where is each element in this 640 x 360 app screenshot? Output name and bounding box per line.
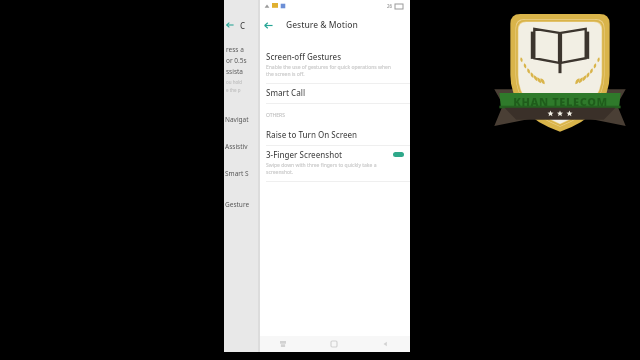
button[interactable]: Screen-off Gestures	[258, 48, 410, 83]
staticText: LTE	[253, 3, 261, 9]
staticText: Navigat	[225, 115, 249, 124]
button[interactable]: Back	[258, 15, 278, 35]
staticText: Assistiv	[225, 142, 248, 151]
staticText: KHAN TELECOM	[513, 94, 608, 109]
button[interactable]: Back	[379, 338, 391, 350]
staticText: ou hold	[226, 79, 243, 85]
button[interactable]: Home	[328, 338, 340, 350]
staticText: OTHERS	[266, 112, 285, 119]
button[interactable]: 3-Finger Screenshot	[258, 146, 410, 181]
staticText: Smart Call	[266, 87, 306, 98]
staticText: ssista	[226, 67, 244, 76]
staticText: Smart S	[225, 169, 249, 178]
staticText: or 0.5s	[226, 56, 247, 65]
button[interactable]: Recents	[277, 338, 289, 350]
button[interactable]: 3-Finger Screenshot toggle	[393, 152, 404, 157]
button[interactable]: Smart Call	[258, 84, 410, 103]
staticText: Gesture & Motion	[286, 19, 358, 31]
button[interactable]: Raise to Turn On Screen	[258, 126, 410, 145]
staticText: 3-Finger Screenshot	[266, 149, 343, 160]
staticText: 26	[387, 3, 393, 9]
staticText: Raise to Turn On Screen	[266, 129, 358, 140]
staticText: ress a	[226, 45, 244, 54]
staticText: Enable the use of gestures for quick ope…	[266, 64, 391, 78]
staticText: e the p	[226, 87, 241, 93]
staticText: Screen-off Gestures	[266, 51, 342, 62]
staticText: Gesture	[225, 200, 250, 209]
staticText: Swipe down with three fingers to quickly…	[266, 162, 377, 176]
staticText: C	[240, 20, 246, 31]
